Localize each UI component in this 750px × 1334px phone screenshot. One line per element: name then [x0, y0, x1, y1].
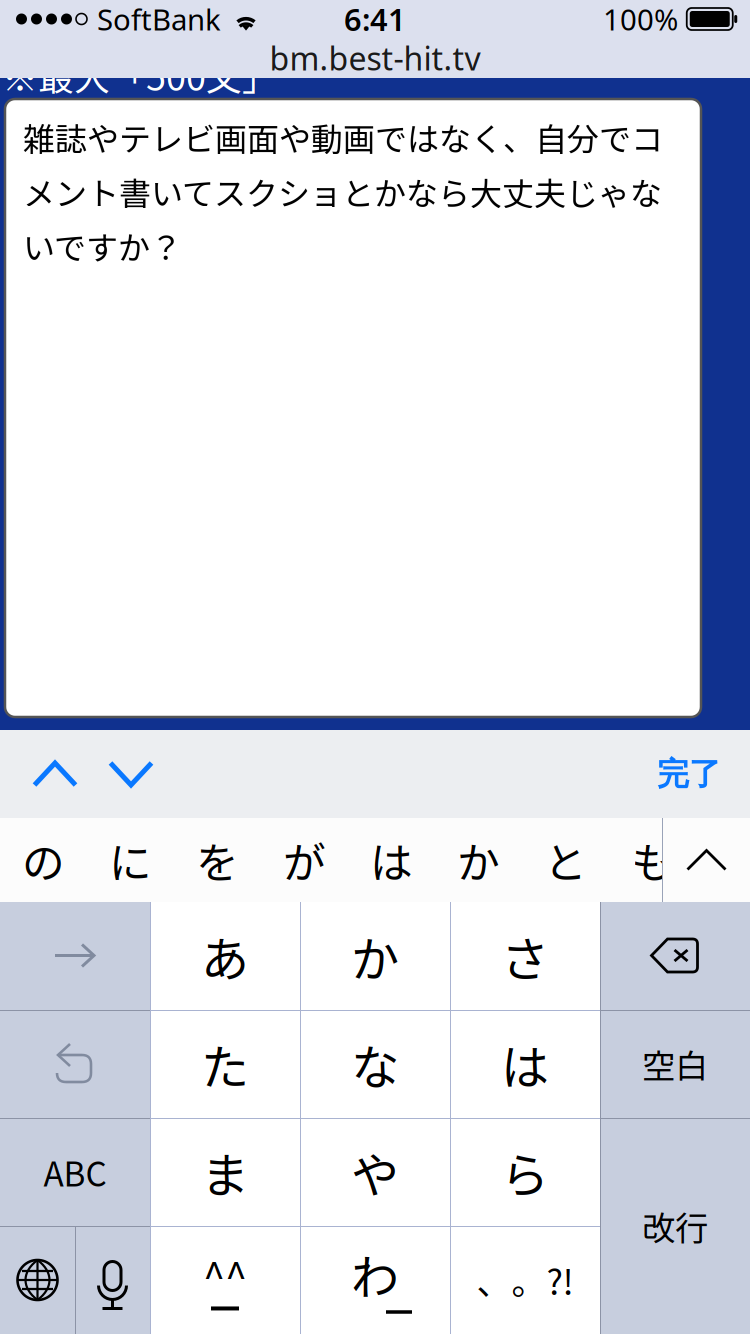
staticText: が	[283, 829, 326, 891]
button[interactable]: More candidates	[662, 818, 750, 902]
button[interactable]: か	[300, 902, 450, 1010]
button[interactable]: Cursor right	[0, 902, 150, 1010]
staticText: ^^	[203, 1245, 247, 1303]
staticText: さ	[501, 921, 549, 991]
button[interactable]: と	[522, 818, 609, 902]
button[interactable]: 改行	[600, 1118, 750, 1334]
staticText: いですか？	[23, 223, 182, 269]
button[interactable]: に	[87, 818, 174, 902]
button[interactable]: Dictation	[75, 1226, 150, 1334]
staticText: 空白	[642, 1040, 708, 1088]
staticText: ABC	[43, 1148, 106, 1196]
button[interactable]: Delete	[600, 902, 750, 1010]
staticText: ま	[201, 1137, 249, 1207]
staticText: メント書いてスクショとかなら大丈夫じゃな	[23, 168, 662, 215]
staticText: か	[351, 921, 399, 991]
staticText: も	[631, 829, 674, 891]
button[interactable]: 、。?!	[450, 1226, 600, 1334]
staticText: 100%	[603, 0, 678, 38]
staticText: の	[22, 829, 65, 891]
button[interactable]: Switch keyboard	[0, 1226, 75, 1334]
button[interactable]: ら	[450, 1118, 600, 1226]
button[interactable]: bm.best-hit.tv	[0, 38, 750, 78]
staticText: bm.best-hit.tv	[269, 37, 480, 79]
staticText: ※最大「500文」	[2, 49, 278, 101]
button[interactable]: わ	[300, 1226, 450, 1334]
button[interactable]: 完了	[644, 730, 734, 818]
staticText: 完了	[657, 754, 721, 794]
button[interactable]: な	[300, 1010, 450, 1118]
button[interactable]: ^^	[150, 1226, 300, 1334]
staticText: た	[201, 1029, 249, 1099]
button[interactable]: は	[450, 1010, 600, 1118]
button[interactable]: も	[609, 818, 696, 902]
button[interactable]: あ	[150, 902, 300, 1010]
staticText: ら	[501, 1137, 549, 1207]
staticText: 6:41	[344, 0, 406, 39]
button[interactable]: Previous field	[17, 730, 93, 818]
staticText: は	[501, 1029, 549, 1099]
staticText: と	[544, 829, 587, 891]
staticText: わ	[351, 1239, 399, 1309]
staticText: あ	[201, 921, 249, 991]
staticText: 雑誌やテレビ画面や動画ではなく、自分でコ	[23, 114, 663, 160]
button[interactable]: を	[174, 818, 261, 902]
staticText: SoftBank	[97, 0, 221, 38]
button[interactable]: さ	[450, 902, 600, 1010]
staticText: 、。?!	[476, 1255, 573, 1305]
staticText: 改行	[642, 1202, 708, 1250]
button[interactable]: た	[150, 1010, 300, 1118]
button[interactable]: Undo	[0, 1010, 150, 1118]
button[interactable]: が	[261, 818, 348, 902]
staticText: は	[370, 829, 413, 891]
button[interactable]: ABC	[0, 1118, 150, 1226]
button[interactable]: 空白	[600, 1010, 750, 1118]
staticText: な	[351, 1029, 399, 1099]
staticText: や	[351, 1137, 399, 1207]
button[interactable]: ま	[150, 1118, 300, 1226]
button[interactable]: Next field	[93, 730, 169, 818]
staticText: に	[109, 829, 152, 891]
button[interactable]: か	[435, 818, 522, 902]
button[interactable]: や	[300, 1118, 450, 1226]
staticText: か	[457, 829, 500, 891]
button[interactable]: は	[348, 818, 435, 902]
button[interactable]: の	[0, 818, 87, 902]
staticText: を	[196, 829, 239, 891]
